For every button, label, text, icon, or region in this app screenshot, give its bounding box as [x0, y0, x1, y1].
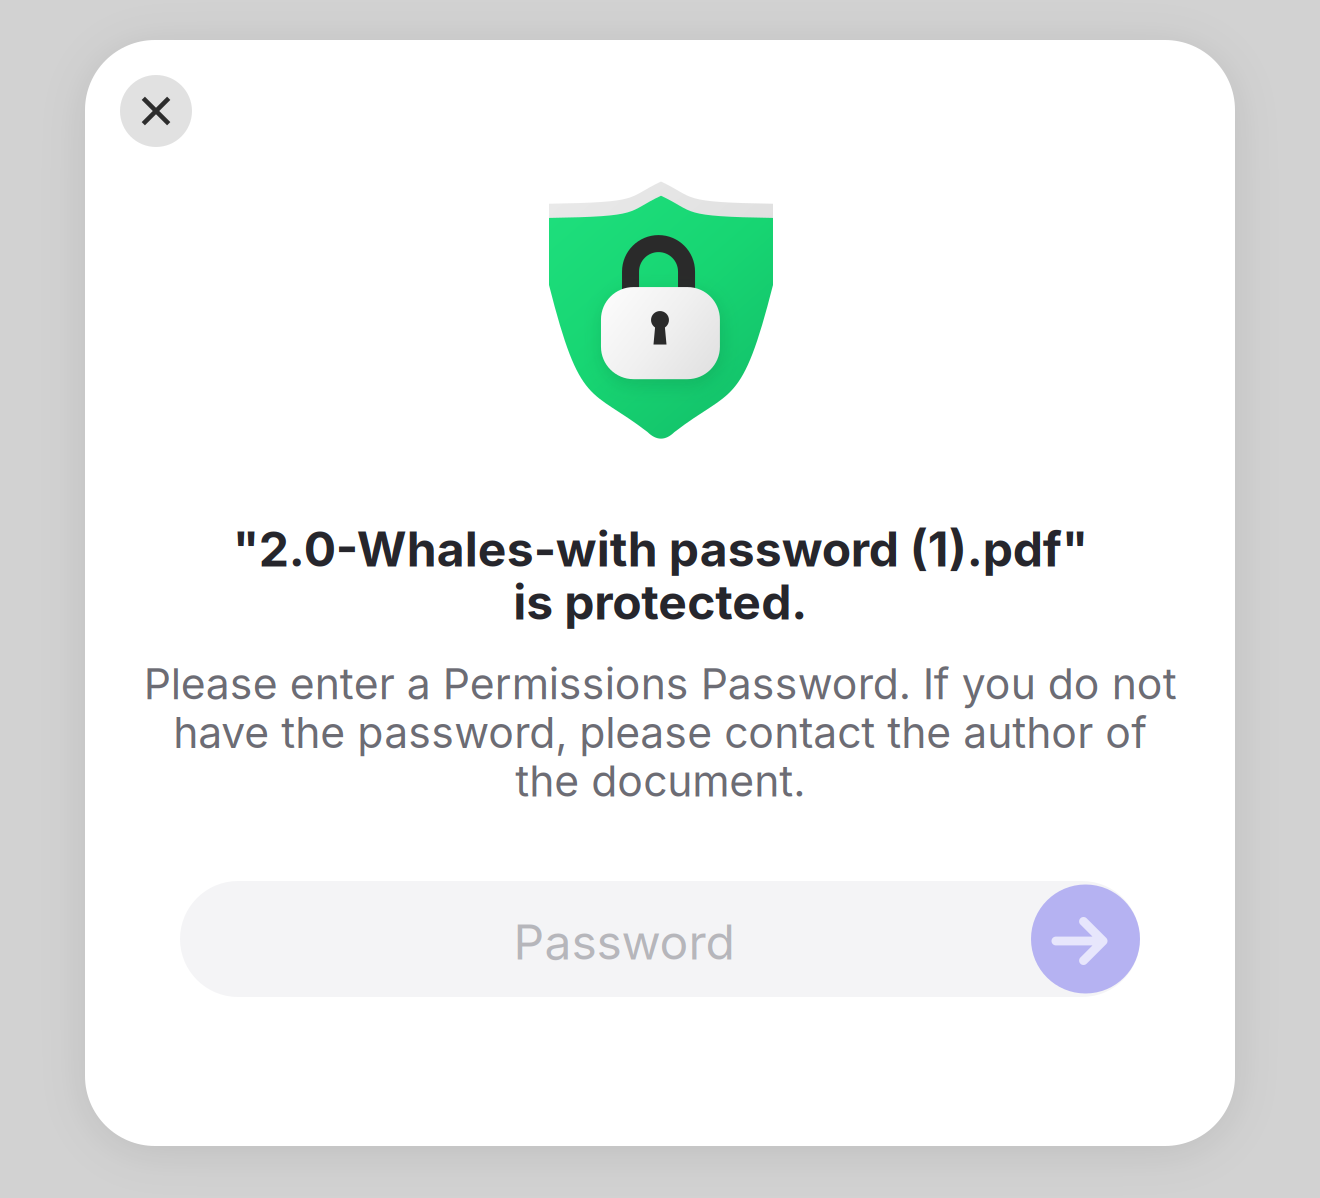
- button[interactable]: Password: [180, 881, 1140, 997]
- button[interactable]: Close: [120, 75, 192, 147]
- staticText: "2.0-Whales-with password (1).pdf" is pr…: [232, 520, 1087, 631]
- button[interactable]: Submit password: [1031, 884, 1140, 993]
- staticText: Password: [513, 913, 734, 971]
- staticText: Please enter a Permissions Password. If …: [143, 658, 1176, 807]
